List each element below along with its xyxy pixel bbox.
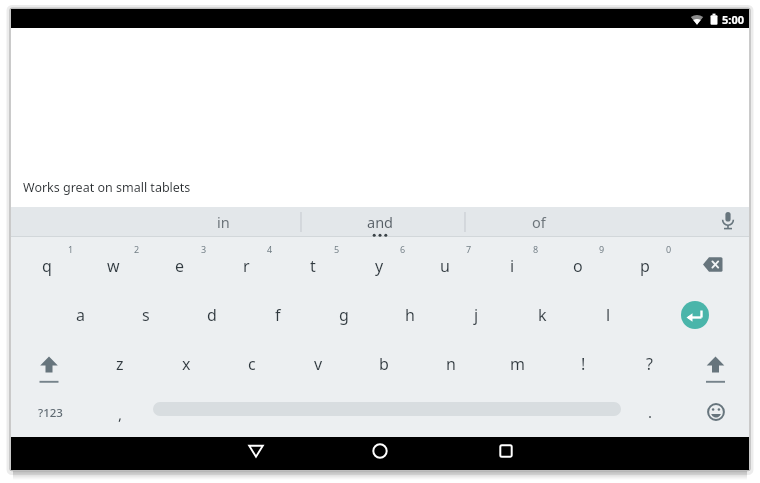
button[interactable]: i: [480, 242, 544, 290]
button[interactable]: [476, 437, 536, 470]
staticText: e: [175, 255, 185, 277]
button[interactable]: g: [312, 291, 376, 339]
button[interactable]: r: [214, 242, 278, 290]
staticText: !: [581, 353, 586, 375]
staticText: Works great on small tablets: [23, 179, 191, 196]
button[interactable]: [19, 339, 79, 389]
staticText: .: [648, 402, 653, 422]
button[interactable]: ,: [100, 390, 140, 438]
button[interactable]: and: [320, 208, 440, 236]
button[interactable]: in: [163, 208, 283, 236]
staticText: 4: [267, 243, 273, 255]
button[interactable]: s: [114, 291, 178, 339]
staticText: s: [142, 304, 150, 326]
staticText: g: [339, 304, 349, 326]
button[interactable]: b: [352, 340, 416, 388]
staticText: k: [538, 304, 547, 326]
staticText: v: [314, 353, 323, 375]
button[interactable]: [685, 339, 745, 389]
button[interactable]: [679, 239, 745, 289]
button[interactable]: ?: [617, 340, 681, 388]
staticText: m: [510, 353, 525, 375]
staticText: o: [573, 255, 583, 277]
button[interactable]: [681, 301, 709, 329]
staticText: q: [42, 255, 52, 277]
staticText: 5:00: [722, 12, 744, 27]
button[interactable]: o: [546, 242, 610, 290]
staticText: 1: [68, 243, 74, 255]
button[interactable]: j: [444, 291, 508, 339]
button[interactable]: w: [81, 242, 145, 290]
button[interactable]: k: [510, 291, 574, 339]
button[interactable]: m: [485, 340, 549, 388]
button[interactable]: f: [246, 291, 310, 339]
staticText: 7: [466, 243, 472, 255]
staticText: 9: [599, 243, 605, 255]
button[interactable]: u: [413, 242, 477, 290]
button[interactable]: of: [479, 208, 599, 236]
staticText: t: [310, 255, 316, 277]
button[interactable]: [686, 388, 746, 436]
button[interactable]: a: [48, 291, 112, 339]
button[interactable]: c: [220, 340, 284, 388]
button[interactable]: d: [180, 291, 244, 339]
staticText: n: [446, 353, 456, 375]
button[interactable]: t: [281, 242, 345, 290]
staticText: of: [532, 212, 546, 232]
staticText: ?: [646, 353, 653, 375]
button[interactable]: [226, 437, 286, 470]
staticText: z: [116, 353, 124, 375]
staticText: x: [182, 353, 191, 375]
staticText: ?123: [38, 405, 63, 421]
button[interactable]: .: [630, 388, 670, 436]
button[interactable]: n: [419, 340, 483, 388]
staticText: d: [207, 304, 217, 326]
staticText: b: [379, 353, 389, 375]
staticText: j: [474, 304, 479, 326]
staticText: y: [375, 255, 384, 277]
button[interactable]: h: [378, 291, 442, 339]
staticText: 8: [533, 243, 539, 255]
staticText: 5: [334, 243, 340, 255]
staticText: a: [76, 304, 85, 326]
button[interactable]: l: [576, 291, 640, 339]
staticText: r: [243, 255, 250, 277]
staticText: h: [405, 304, 415, 326]
staticText: 6: [400, 243, 406, 255]
button[interactable]: !: [551, 340, 615, 388]
staticText: 2: [134, 243, 140, 255]
staticText: p: [640, 255, 650, 277]
button[interactable]: ?123: [20, 389, 80, 437]
staticText: w: [107, 255, 120, 277]
button[interactable]: z: [88, 340, 152, 388]
button[interactable]: y: [347, 242, 411, 290]
staticText: u: [440, 255, 450, 277]
staticText: f: [275, 304, 281, 326]
staticText: ,: [118, 404, 123, 424]
staticText: i: [510, 255, 515, 277]
staticText: in: [217, 212, 230, 232]
button[interactable]: v: [286, 340, 350, 388]
staticText: 0: [666, 243, 672, 255]
staticText: c: [248, 353, 256, 375]
button[interactable]: p: [613, 242, 677, 290]
button[interactable]: [350, 437, 410, 470]
staticText: and: [367, 212, 394, 232]
button[interactable]: x: [154, 340, 218, 388]
staticText: 3: [201, 243, 207, 255]
button[interactable]: q: [15, 242, 79, 290]
button[interactable]: e: [148, 242, 212, 290]
staticText: l: [606, 304, 611, 326]
